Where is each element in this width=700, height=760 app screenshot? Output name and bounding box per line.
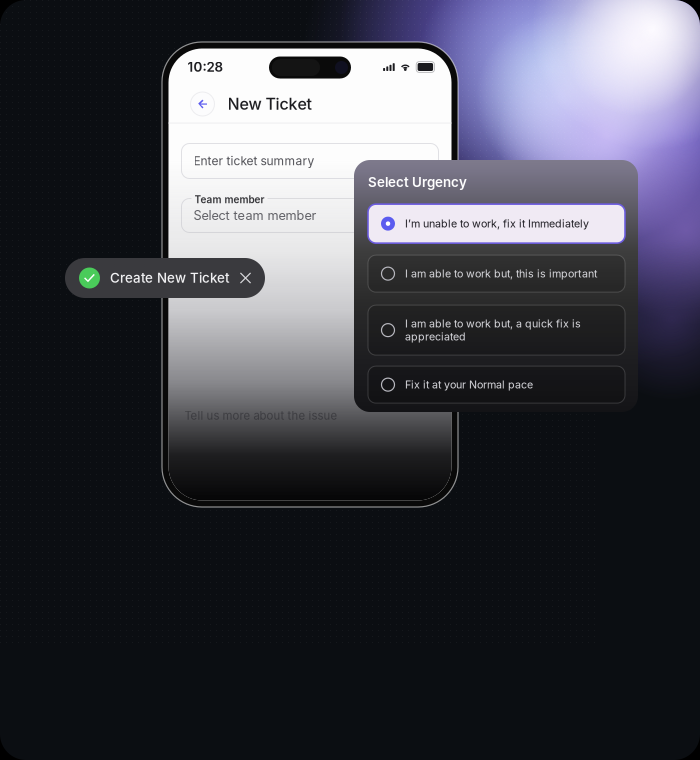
- button[interactable]: I’m unable to work, fix it Immediately: [368, 204, 625, 243]
- button[interactable]: Fix it at your Normal pace: [368, 366, 625, 403]
- staticText: Tell us more about the issue: [184, 409, 337, 422]
- staticText: Fix it at your Normal pace: [405, 378, 533, 391]
- button[interactable]: Select team member: [181, 198, 438, 232]
- staticText: I’m unable to work, fix it Immediately: [405, 217, 589, 230]
- staticText: New Ticket: [227, 94, 311, 114]
- button[interactable]: I am able to work but, this is important: [368, 255, 625, 292]
- staticText: Select team member: [193, 208, 316, 223]
- staticText: Create New Ticket: [110, 270, 230, 286]
- staticText: I am able to work but, a quick fix is ap…: [405, 317, 581, 343]
- staticText: 10:28: [187, 59, 223, 75]
- button[interactable]: Create New Ticket: [65, 258, 265, 298]
- button[interactable]: Back: [190, 92, 214, 116]
- staticText: Team member: [194, 193, 264, 206]
- staticText: Select Urgency: [368, 174, 467, 190]
- button[interactable]: I am able to work but, a quick fix is ap…: [368, 305, 625, 355]
- button[interactable]: Enter ticket summary: [181, 143, 438, 178]
- staticText: Enter ticket summary: [193, 154, 314, 168]
- staticText: I am able to work but, this is important: [405, 267, 597, 280]
